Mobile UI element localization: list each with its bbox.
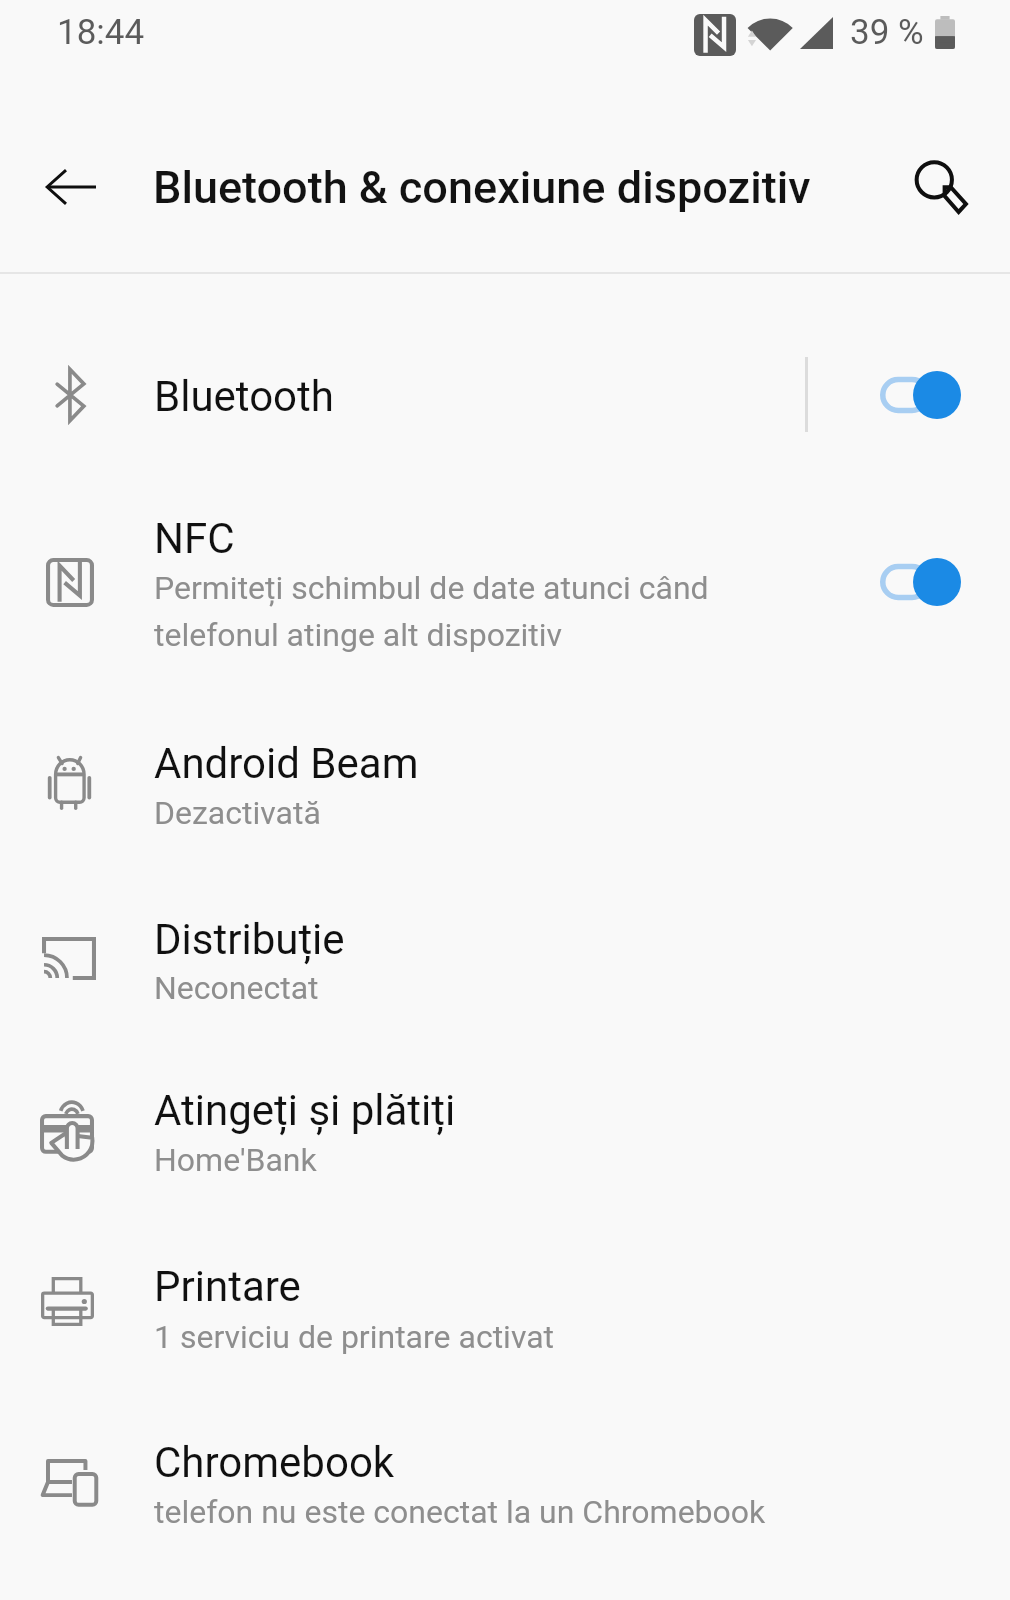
button[interactable]: Toggle NFC — [868, 544, 974, 620]
staticText: Neconectat — [154, 969, 319, 1007]
button[interactable]: Atingeți și plătiți — [0, 1053, 1010, 1203]
staticText: telefon nu este conectat la un Chromeboo… — [154, 1493, 766, 1531]
staticText: 18:44 — [57, 12, 145, 53]
staticText: telefonul atinge alt dispozitiv — [154, 616, 563, 654]
staticText: 39 % — [850, 12, 924, 53]
button[interactable]: Printare — [0, 1229, 1010, 1379]
button[interactable]: Search — [894, 140, 988, 234]
button[interactable]: Bluetooth — [0, 330, 1010, 465]
staticText: Android Beam — [154, 739, 419, 788]
staticText: Printare — [154, 1262, 301, 1311]
button[interactable]: Toggle Bluetooth — [868, 357, 974, 433]
staticText: Chromebook — [154, 1438, 395, 1487]
button[interactable]: Distribuție — [0, 882, 1010, 1030]
button[interactable]: Back — [24, 140, 118, 234]
staticText: NFC — [154, 514, 235, 563]
staticText: Permiteți schimbul de date atunci când — [154, 569, 709, 607]
staticText: 1 serviciu de printare activat — [154, 1318, 555, 1356]
staticText: Dezactivată — [154, 794, 321, 832]
staticText: Bluetooth — [154, 372, 334, 421]
button[interactable]: Android Beam — [0, 705, 1010, 855]
button[interactable]: Chromebook — [0, 1405, 1010, 1555]
button[interactable]: NFC — [0, 478, 1010, 680]
staticText: Atingeți și plătiți — [154, 1086, 456, 1135]
staticText: Home'Bank — [154, 1141, 317, 1179]
staticText: Distribuție — [154, 915, 345, 964]
staticText: Bluetooth & conexiune dispozitiv — [153, 161, 811, 214]
